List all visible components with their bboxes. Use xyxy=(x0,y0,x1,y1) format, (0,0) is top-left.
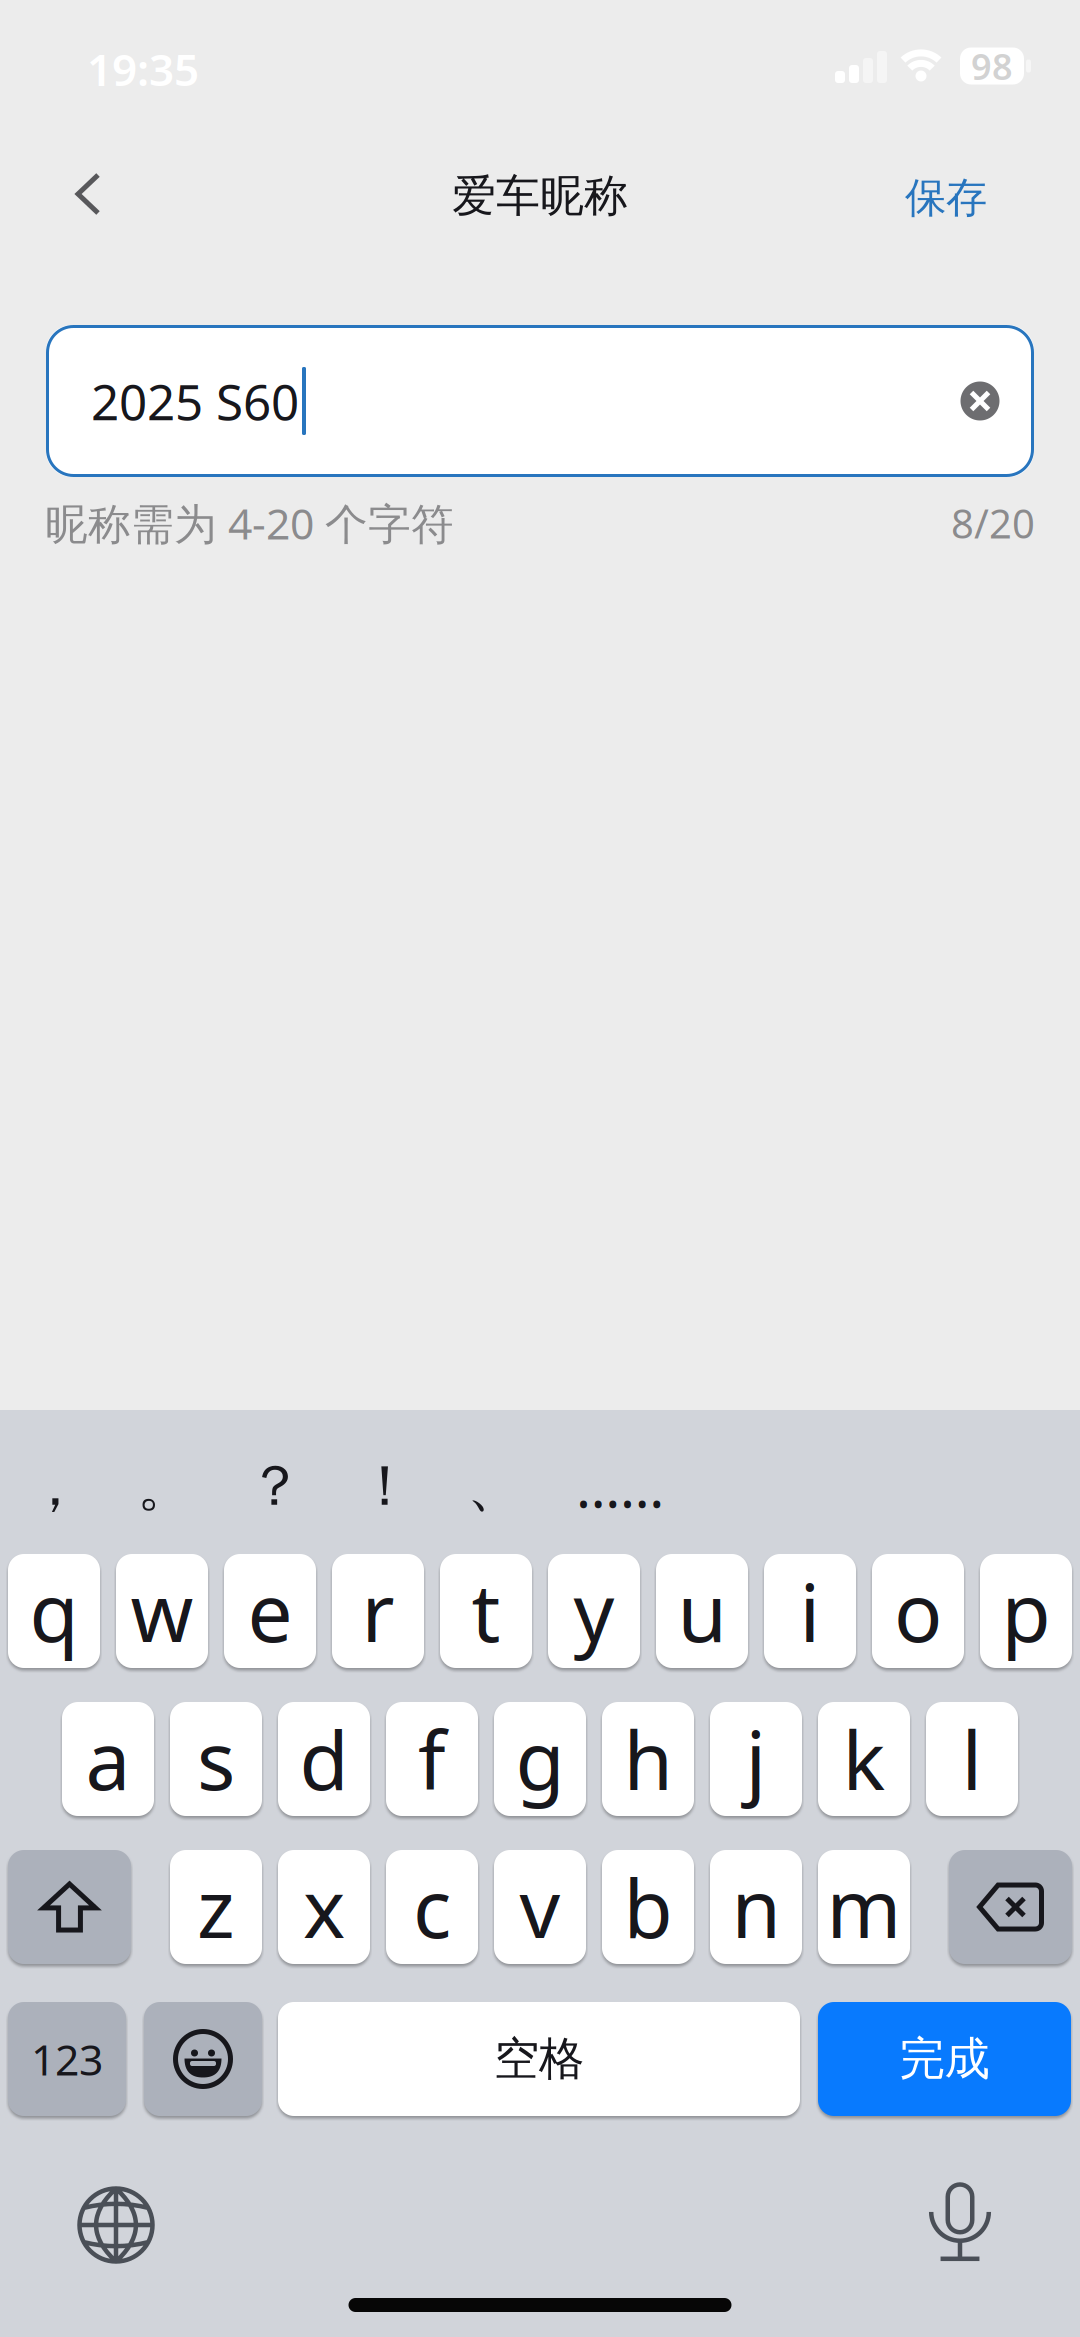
button[interactable]: 123 xyxy=(8,2002,126,2116)
staticText: 123 xyxy=(31,2031,103,2087)
staticText: l xyxy=(961,1706,982,1812)
button[interactable]: m xyxy=(818,1850,910,1964)
staticText: e xyxy=(247,1558,292,1664)
button[interactable]: s xyxy=(170,1702,262,1816)
button[interactable]: k xyxy=(818,1702,910,1816)
staticText: 。 xyxy=(137,1452,193,1520)
staticText: 19:35 xyxy=(87,40,199,98)
staticText: g xyxy=(515,1706,564,1812)
button[interactable]: d xyxy=(278,1702,370,1816)
button[interactable]: l xyxy=(926,1702,1018,1816)
staticText: m xyxy=(826,1854,901,1960)
button[interactable]: Clear text xyxy=(950,371,1010,431)
staticText: 、 xyxy=(467,1452,523,1520)
button[interactable]: b xyxy=(602,1850,694,1964)
staticText: k xyxy=(842,1706,885,1812)
staticText: f xyxy=(418,1706,446,1812)
button[interactable]: Shift xyxy=(8,1850,131,1964)
button[interactable]: v xyxy=(494,1850,586,1964)
button[interactable]: 空格 xyxy=(278,2002,800,2116)
staticText: 爱车昵称 xyxy=(452,169,628,223)
button[interactable]: 完成 xyxy=(818,2002,1071,2116)
staticText: …… xyxy=(576,1449,664,1523)
staticText: n xyxy=(731,1854,780,1960)
button[interactable]: x xyxy=(278,1850,370,1964)
staticText: y xyxy=(573,1558,614,1664)
staticText: x xyxy=(303,1854,345,1960)
staticText: 昵称需为 4-20 个字符 xyxy=(45,495,454,551)
staticText: r xyxy=(361,1558,394,1664)
staticText: 保存 xyxy=(905,173,987,223)
button[interactable]: Emoji xyxy=(144,2002,262,2116)
button[interactable]: y xyxy=(548,1554,640,1668)
staticText: a xyxy=(85,1706,130,1812)
staticText: j xyxy=(745,1706,766,1812)
button[interactable]: u xyxy=(656,1554,748,1668)
button[interactable]: j xyxy=(710,1702,802,1816)
staticText: ， xyxy=(27,1452,83,1520)
button[interactable]: z xyxy=(170,1850,262,1964)
button[interactable]: g xyxy=(494,1702,586,1816)
staticText: t xyxy=(471,1558,500,1664)
button[interactable]: ？ xyxy=(220,1426,330,1546)
staticText: q xyxy=(29,1558,78,1664)
button[interactable]: ！ xyxy=(330,1426,440,1546)
button[interactable]: …… xyxy=(550,1426,690,1546)
staticText: 2025 S60 xyxy=(91,368,299,434)
button[interactable]: p xyxy=(980,1554,1072,1668)
staticText: 8/20 xyxy=(951,496,1035,549)
staticText: v xyxy=(519,1854,560,1960)
button[interactable]: t xyxy=(440,1554,532,1668)
button[interactable]: a xyxy=(62,1702,154,1816)
staticText: u xyxy=(677,1558,726,1664)
staticText: d xyxy=(299,1706,348,1812)
button[interactable]: Back xyxy=(48,154,128,234)
button[interactable]: 保存 xyxy=(905,173,987,223)
staticText: ！ xyxy=(357,1452,413,1520)
button[interactable]: w xyxy=(116,1554,208,1668)
button[interactable]: ， xyxy=(0,1426,110,1546)
button[interactable]: 。 xyxy=(110,1426,220,1546)
button[interactable]: f xyxy=(386,1702,478,1816)
staticText: 空格 xyxy=(494,2031,584,2087)
button[interactable]: r xyxy=(332,1554,424,1668)
button[interactable]: h xyxy=(602,1702,694,1816)
staticText: p xyxy=(1001,1558,1050,1664)
button[interactable]: q xyxy=(8,1554,100,1668)
staticText: z xyxy=(197,1854,235,1960)
staticText: b xyxy=(623,1854,672,1960)
staticText: o xyxy=(894,1558,942,1664)
button[interactable]: e xyxy=(224,1554,316,1668)
button[interactable]: Dictate xyxy=(905,2168,1015,2278)
button[interactable]: i xyxy=(764,1554,856,1668)
button[interactable]: 、 xyxy=(440,1426,550,1546)
staticText: 完成 xyxy=(899,2031,989,2087)
staticText: c xyxy=(413,1854,451,1960)
staticText: ？ xyxy=(247,1452,303,1520)
staticText: w xyxy=(130,1558,193,1664)
button[interactable]: Switch keyboard xyxy=(61,2170,171,2280)
button[interactable]: n xyxy=(710,1850,802,1964)
staticText: i xyxy=(799,1558,820,1664)
staticText: s xyxy=(197,1706,235,1812)
staticText: 98 xyxy=(971,42,1013,90)
button[interactable]: o xyxy=(872,1554,964,1668)
button[interactable]: c xyxy=(386,1850,478,1964)
staticText: h xyxy=(623,1706,672,1812)
button[interactable]: Delete xyxy=(949,1850,1072,1964)
